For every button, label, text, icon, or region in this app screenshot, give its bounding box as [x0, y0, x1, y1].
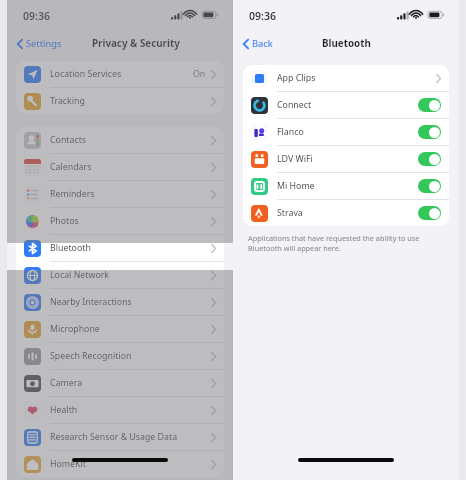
button[interactable]: LDV WiFi Bluetooth permission on — [418, 152, 441, 166]
staticText: LDV WiFi — [277, 153, 313, 165]
staticText: Settings — [26, 37, 62, 50]
button[interactable]: Bluetooth — [16, 235, 224, 261]
button[interactable]: Connect — [243, 92, 449, 118]
button[interactable]: Research Sensor & Usage Data — [16, 424, 224, 450]
button[interactable]: Back — [241, 34, 275, 53]
button[interactable]: Local Network — [16, 262, 224, 288]
staticText: Contacts — [50, 134, 87, 146]
staticText: Applications that have requested the abi… — [248, 233, 420, 253]
staticText: Camera — [50, 377, 83, 389]
staticText: 09:36 — [23, 9, 50, 23]
button[interactable]: Strava — [243, 200, 449, 226]
button[interactable]: Settings — [15, 34, 64, 53]
button[interactable]: Mi Home Bluetooth permission on — [418, 179, 441, 193]
button[interactable]: Health — [16, 397, 224, 423]
staticText: App Clips — [277, 72, 316, 84]
button[interactable]: Camera — [16, 370, 224, 396]
button[interactable]: LDV WiFi — [243, 146, 449, 172]
staticText: Strava — [277, 207, 303, 219]
button[interactable]: Flanco — [243, 119, 449, 145]
button[interactable]: Mi Home — [243, 173, 449, 199]
staticText: Privacy & Security — [92, 37, 180, 50]
button[interactable]: Nearby Interactions — [16, 289, 224, 315]
button[interactable]: Strava Bluetooth permission on — [418, 206, 441, 220]
button[interactable]: Connect Bluetooth permission on — [418, 98, 441, 112]
button[interactable]: Location Services — [16, 61, 224, 87]
staticText: Bluetooth — [50, 242, 91, 254]
button[interactable]: App Clips — [243, 65, 449, 91]
button[interactable]: Reminders — [16, 181, 224, 207]
staticText: On — [193, 68, 206, 80]
staticText: Connect — [277, 99, 312, 111]
button[interactable]: Tracking — [16, 88, 224, 114]
button[interactable]: Flanco Bluetooth permission on — [418, 125, 441, 139]
button[interactable]: Speech Recognition — [16, 343, 224, 369]
staticText: Microphone — [50, 323, 100, 335]
button[interactable]: HomeKit — [16, 451, 224, 477]
staticText: Flanco — [277, 126, 304, 138]
staticText: Tracking — [50, 95, 85, 107]
button[interactable]: Calendars — [16, 154, 224, 180]
staticText: Photos — [50, 215, 79, 227]
staticText: HomeKit — [50, 458, 86, 470]
staticText: Speech Recognition — [50, 350, 132, 362]
button[interactable]: Contacts — [16, 127, 224, 153]
staticText: Health — [50, 404, 78, 416]
staticText: Mi Home — [277, 180, 315, 192]
staticText: Bluetooth — [322, 37, 371, 50]
staticText: Reminders — [50, 188, 95, 200]
staticText: 09:36 — [249, 9, 276, 23]
staticText: Calendars — [50, 161, 92, 173]
button[interactable]: Microphone — [16, 316, 224, 342]
staticText: Local Network — [50, 269, 110, 281]
staticText: Nearby Interactions — [50, 296, 132, 308]
staticText: Research Sensor & Usage Data — [50, 431, 178, 443]
staticText: Location Services — [50, 68, 122, 80]
button[interactable]: Photos — [16, 208, 224, 234]
staticText: Back — [252, 37, 273, 50]
